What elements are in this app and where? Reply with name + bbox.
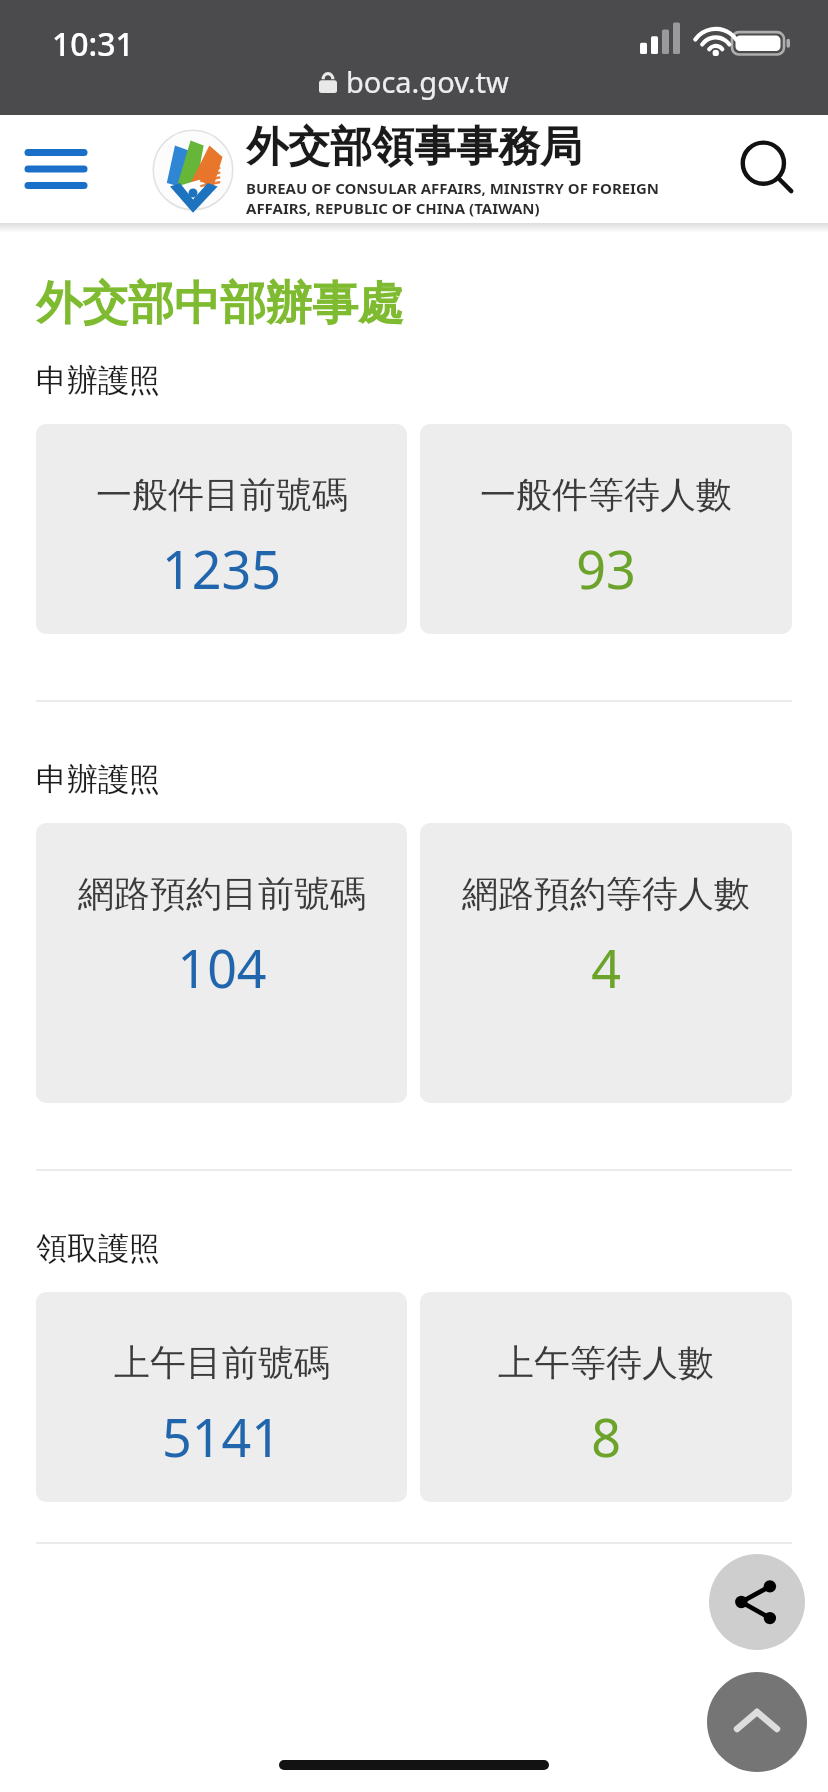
staticText: 申辦護照 [36, 760, 160, 799]
staticText: 網路預約目前號碼 [78, 871, 366, 916]
staticText: 領取護照 [36, 1229, 160, 1268]
staticText: 93 [576, 533, 636, 604]
button[interactable]: 一般件等待人數 [420, 424, 792, 634]
button[interactable]: Search [726, 127, 810, 211]
staticText: 網路預約等待人數 [462, 871, 750, 916]
staticText: 上午等待人數 [498, 1340, 714, 1385]
button[interactable]: 上午等待人數 [420, 1292, 792, 1502]
staticText: AFFAIRS, REPUBLIC OF CHINA (TAIWAN) [246, 198, 540, 218]
staticText: 外交部中部辦事處 [36, 275, 404, 333]
staticText: 4 [591, 932, 621, 1003]
button[interactable]: 網路預約等待人數 [420, 823, 792, 1103]
button[interactable]: 網路預約目前號碼 [36, 823, 407, 1103]
button[interactable]: Menu [18, 131, 94, 207]
staticText: 5141 [162, 1401, 281, 1472]
staticText: 8 [591, 1401, 621, 1472]
staticText: 外交部領事事務局 [246, 121, 582, 174]
staticText: 一般件目前號碼 [96, 472, 348, 517]
staticText: 上午目前號碼 [114, 1340, 330, 1385]
staticText: 一般件等待人數 [480, 472, 732, 517]
button[interactable]: 上午目前號碼 [36, 1292, 407, 1502]
button[interactable]: Scroll to top [707, 1672, 807, 1772]
staticText: BUREAU OF CONSULAR AFFAIRS, MINISTRY OF … [246, 178, 660, 198]
button[interactable]: Share [709, 1554, 805, 1650]
staticText: boca.gov.tw [346, 62, 509, 101]
staticText: 1235 [162, 533, 281, 604]
button[interactable]: 一般件目前號碼 [36, 424, 407, 634]
staticText: 申辦護照 [36, 361, 160, 400]
staticText: 104 [177, 932, 267, 1003]
staticText: 10:31 [52, 22, 134, 66]
